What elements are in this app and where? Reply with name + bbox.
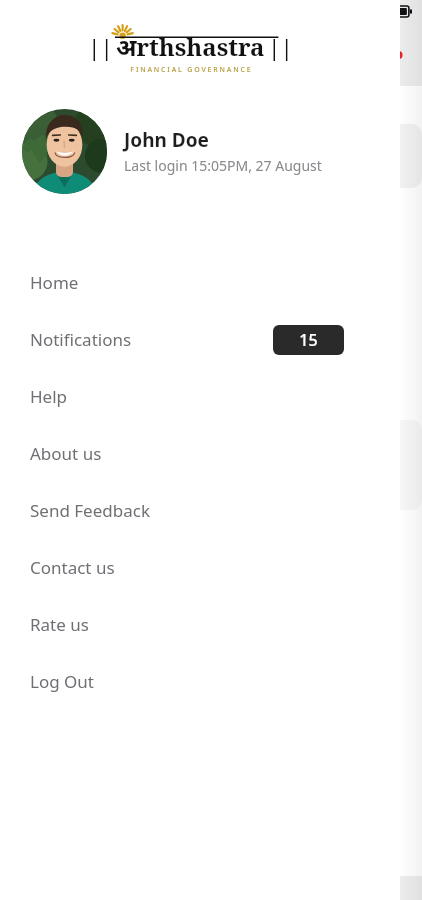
staticText: अrthshastra — [116, 30, 265, 63]
staticText: John Doe — [124, 127, 209, 153]
button[interactable]: Home — [0, 254, 400, 311]
staticText: Rate us — [30, 613, 89, 636]
button[interactable]: Rate us — [0, 596, 400, 653]
staticText: 15 — [299, 329, 318, 351]
button[interactable]: John Doe — [0, 96, 400, 206]
button[interactable]: Notifications — [374, 44, 410, 80]
button[interactable]: About us — [0, 425, 400, 482]
staticText: || — [268, 32, 293, 62]
button[interactable]: Help — [0, 368, 400, 425]
staticText: Notifications — [30, 328, 132, 351]
staticText: Log Out — [30, 670, 94, 693]
button[interactable]: Log Out — [0, 653, 400, 710]
button[interactable]: Send Feedback — [0, 482, 400, 539]
button[interactable]: Contact us — [0, 539, 400, 596]
staticText: Contact us — [30, 556, 115, 579]
staticText: About us — [30, 442, 102, 465]
staticText: F I N A N C I A L G O V E R N A N C E — [130, 65, 251, 75]
staticText: Send Feedback — [30, 499, 150, 522]
button[interactable]: Arthshastra Financial Governance — [88, 18, 293, 75]
button[interactable]: Notifications — [0, 311, 400, 368]
staticText: || — [88, 32, 113, 62]
staticText: Last login 15:05PM, 27 August — [124, 156, 322, 175]
staticText: Help — [30, 385, 68, 408]
staticText: Home — [30, 271, 79, 294]
